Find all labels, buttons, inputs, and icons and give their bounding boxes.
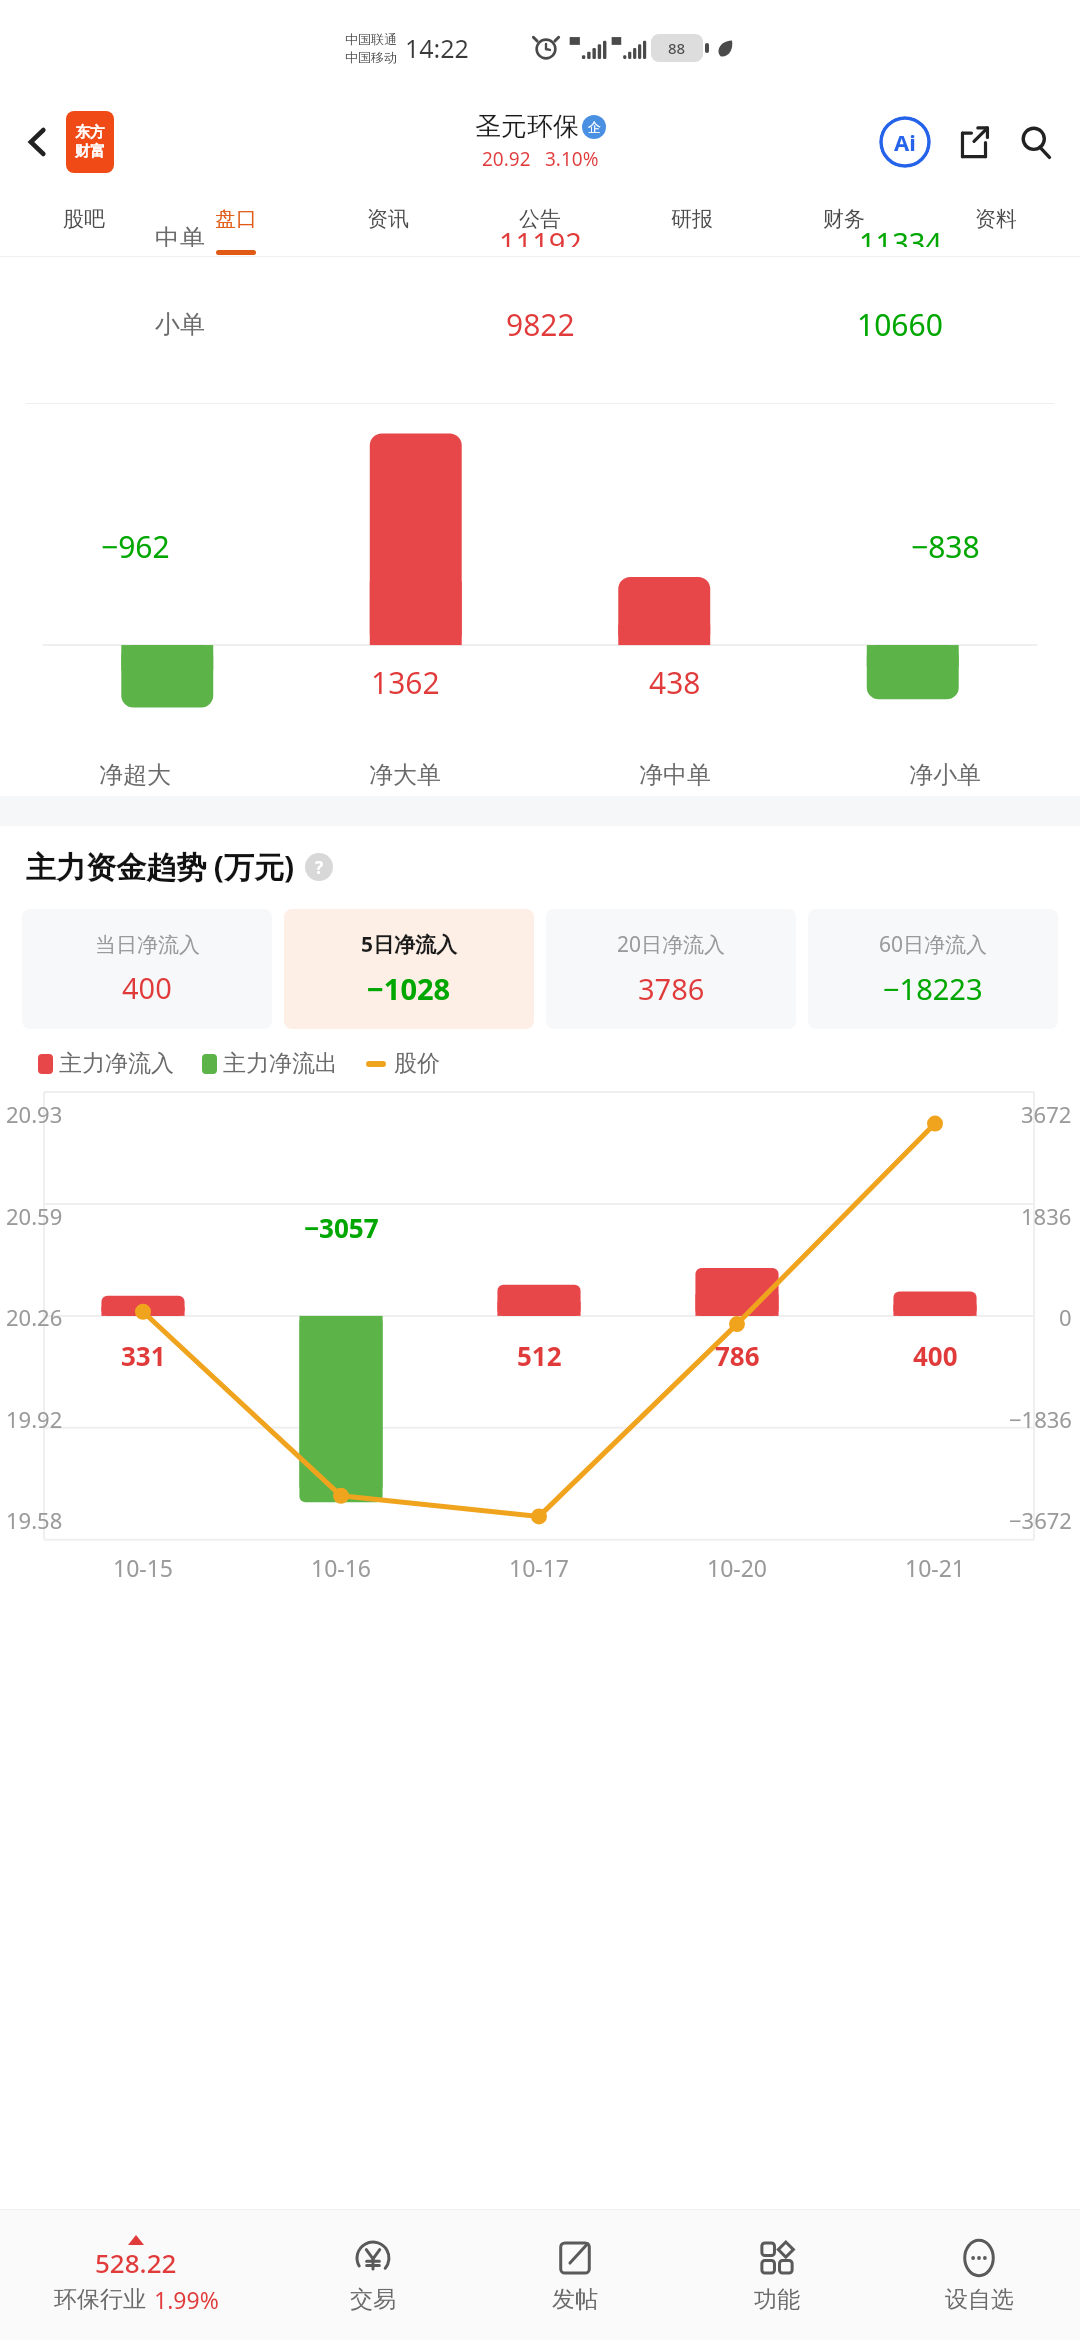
- button[interactable]: 财务: [768, 188, 920, 250]
- staticText: 财务: [823, 206, 865, 232]
- staticText: 10-16: [311, 1552, 372, 1583]
- button[interactable]: 资料: [920, 188, 1072, 250]
- staticText: 环保行业: [54, 2285, 146, 2314]
- button[interactable]: 资讯: [312, 188, 464, 250]
- staticText: 11192: [499, 223, 582, 247]
- staticText: 设自选: [945, 2285, 1014, 2314]
- staticText: 交易: [350, 2285, 396, 2314]
- staticText: 60日净流入: [879, 930, 988, 959]
- button[interactable]: 交易: [272, 2210, 474, 2340]
- staticText: 中国联通: [345, 31, 397, 47]
- staticText: 88: [668, 38, 686, 58]
- staticText: 20.59: [6, 1201, 63, 1231]
- staticText: 528.22: [95, 2245, 177, 2280]
- staticText: −1028: [367, 969, 451, 1008]
- staticText: 主力净流入: [59, 1049, 174, 1078]
- button[interactable]: 分享: [946, 114, 1002, 170]
- staticText: 中单: [155, 223, 205, 247]
- staticText: 公告: [519, 206, 561, 232]
- staticText: −18223: [883, 969, 983, 1008]
- staticText: −838: [911, 526, 980, 567]
- button[interactable]: 返回: [10, 114, 66, 170]
- button[interactable]: 528.22: [0, 2210, 272, 2340]
- staticText: 10-21: [905, 1552, 966, 1583]
- staticText: 20日净流入: [617, 930, 726, 959]
- button[interactable]: 5日净流入: [284, 909, 534, 1029]
- staticText: 功能: [754, 2285, 800, 2314]
- staticText: 企: [588, 119, 601, 135]
- staticText: 19.92: [6, 1404, 63, 1434]
- staticText: 10-20: [707, 1552, 768, 1583]
- staticText: 东方: [75, 123, 105, 142]
- staticText: 19.58: [6, 1505, 63, 1535]
- staticText: 331: [121, 1338, 166, 1373]
- staticText: 净小单: [909, 760, 981, 790]
- button[interactable]: 盘口: [160, 188, 312, 250]
- staticText: 主力净流出: [223, 1049, 338, 1078]
- staticText: 股吧: [63, 206, 105, 232]
- button[interactable]: 股吧: [8, 188, 160, 250]
- staticText: 圣元环保: [475, 110, 579, 143]
- button[interactable]: 东方财富: [66, 111, 114, 173]
- button[interactable]: 公告: [464, 188, 616, 250]
- staticText: 资讯: [367, 206, 409, 232]
- staticText: 5日净流入: [361, 930, 458, 959]
- staticText: 20.93: [6, 1099, 63, 1129]
- staticText: 小单: [155, 309, 205, 340]
- button[interactable]: AI: [874, 111, 936, 173]
- staticText: 3786: [638, 969, 705, 1008]
- staticText: 786: [715, 1338, 760, 1373]
- staticText: 14:22: [405, 31, 469, 65]
- staticText: 20.26: [6, 1302, 63, 1332]
- staticText: 盘口: [215, 206, 257, 232]
- staticText: 10-17: [509, 1552, 570, 1583]
- staticText: ?: [315, 856, 324, 879]
- staticText: Ai: [894, 127, 916, 157]
- button[interactable]: 发帖: [474, 2210, 676, 2340]
- staticText: 438: [649, 662, 701, 703]
- staticText: −3057: [304, 1210, 379, 1245]
- staticText: 净大单: [369, 760, 441, 790]
- button[interactable]: 设自选: [878, 2210, 1080, 2340]
- staticText: 11334: [859, 223, 942, 247]
- staticText: 研报: [671, 206, 713, 232]
- button[interactable]: 功能: [676, 2210, 878, 2340]
- button[interactable]: 当日净流入: [22, 909, 272, 1029]
- staticText: 9822: [506, 304, 575, 345]
- staticText: 20.92: [482, 146, 531, 172]
- staticText: −3672: [1009, 1505, 1072, 1535]
- staticText: 发帖: [552, 2285, 598, 2314]
- button[interactable]: 60日净流入: [808, 909, 1058, 1029]
- staticText: 400: [122, 968, 172, 1007]
- staticText: 3.10%: [545, 146, 599, 172]
- other: 说明: [305, 853, 333, 881]
- staticText: 股价: [394, 1049, 440, 1078]
- staticText: 10660: [857, 304, 943, 345]
- staticText: 512: [517, 1338, 562, 1373]
- button[interactable]: 研报: [616, 188, 768, 250]
- button[interactable]: 搜索: [1008, 114, 1064, 170]
- staticText: 0: [1059, 1302, 1072, 1332]
- staticText: 3672: [1021, 1099, 1072, 1129]
- staticText: 1.99%: [154, 2284, 219, 2315]
- staticText: 400: [913, 1338, 958, 1373]
- staticText: 财富: [75, 142, 105, 161]
- staticText: −962: [101, 526, 170, 567]
- staticText: −1836: [1009, 1404, 1072, 1434]
- staticText: 主力资金趋势 (万元): [26, 846, 295, 887]
- staticText: 净中单: [639, 760, 711, 790]
- button[interactable]: 20日净流入: [546, 909, 796, 1029]
- staticText: 中国移动: [345, 49, 397, 65]
- staticText: 资料: [975, 206, 1017, 232]
- button[interactable]: 主力资金趋势 (万元): [26, 846, 1080, 887]
- staticText: 净超大: [99, 760, 171, 790]
- staticText: 10-15: [113, 1552, 174, 1583]
- staticText: 1836: [1021, 1201, 1072, 1231]
- staticText: 1362: [371, 662, 440, 703]
- staticText: 当日净流入: [95, 932, 200, 958]
